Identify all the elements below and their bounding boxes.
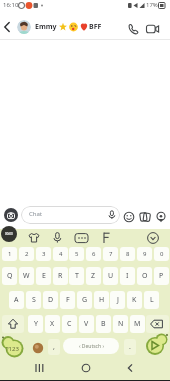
staticText: A (14, 295, 19, 305)
button[interactable]: 00:00 (1, 226, 17, 242)
staticText: 6 (92, 250, 96, 258)
button[interactable] (30, 361, 50, 375)
staticText: ‹ Deutsch › (79, 343, 104, 350)
staticText: Chat (29, 210, 43, 218)
button[interactable]: D (43, 291, 58, 309)
staticText: ?123 (6, 345, 19, 353)
staticText: I (126, 271, 129, 281)
button[interactable]: S (26, 291, 41, 309)
button[interactable]: 4 (53, 247, 68, 261)
button[interactable]: Emmy (35, 21, 102, 33)
staticText: G (82, 295, 88, 305)
staticText: J (117, 295, 119, 305)
staticText: N (118, 319, 124, 329)
staticText: Z (91, 271, 96, 281)
button[interactable] (32, 342, 44, 354)
button[interactable]: 6 (86, 247, 101, 261)
button[interactable] (27, 231, 41, 245)
button[interactable]: ?123 (0, 334, 28, 360)
staticText: 00:00 (5, 232, 13, 236)
button[interactable] (126, 22, 140, 36)
staticText: Q (7, 271, 13, 281)
button[interactable]: Z (86, 267, 101, 285)
button[interactable]: 1 (2, 247, 17, 261)
button[interactable]: V (79, 315, 94, 333)
button[interactable] (155, 211, 167, 223)
staticText: 5 (75, 250, 79, 258)
button[interactable]: U (103, 267, 118, 285)
button[interactable]: ‹ Deutsch › (63, 338, 119, 354)
button[interactable]: T (69, 267, 84, 285)
staticText: 0 (160, 250, 164, 258)
button[interactable] (51, 231, 64, 245)
button[interactable] (120, 361, 140, 375)
button[interactable]: W (19, 267, 34, 285)
button[interactable]: C (62, 315, 77, 333)
button[interactable]: , (48, 339, 60, 355)
staticText: Emmy (35, 22, 57, 32)
button[interactable]: J (110, 291, 125, 309)
staticText: 16:10 (3, 1, 19, 9)
staticText: 1 (8, 250, 12, 258)
button[interactable] (145, 23, 161, 35)
staticText: V (84, 319, 89, 329)
button[interactable]: I (120, 267, 135, 285)
button[interactable]: K (127, 291, 142, 309)
staticText: F (66, 295, 70, 305)
button[interactable] (142, 332, 170, 358)
button[interactable] (17, 20, 31, 34)
button[interactable] (123, 211, 135, 223)
button[interactable]: N (113, 315, 128, 333)
staticText: 4 (59, 250, 63, 258)
button[interactable] (139, 211, 151, 223)
staticText: 2 (25, 250, 29, 258)
button[interactable]: L (144, 291, 159, 309)
button[interactable]: M (130, 315, 145, 333)
staticText: E (42, 271, 46, 281)
button[interactable] (146, 315, 169, 333)
staticText: 9 (143, 250, 147, 258)
button[interactable]: A (9, 291, 24, 309)
button[interactable]: 3 (36, 247, 51, 261)
button[interactable]: . (124, 339, 136, 355)
button[interactable] (146, 231, 160, 245)
button[interactable]: 2 (19, 247, 34, 261)
staticText: U (108, 271, 114, 281)
button[interactable]: 7 (103, 247, 118, 261)
button[interactable] (2, 315, 24, 333)
button[interactable]: P (154, 267, 169, 285)
button[interactable] (76, 361, 96, 375)
button[interactable]: X (45, 315, 60, 333)
staticText: K (132, 295, 137, 305)
staticText: T (75, 271, 79, 281)
button[interactable] (4, 208, 18, 222)
button[interactable]: 8 (120, 247, 135, 261)
button[interactable]: R (53, 267, 68, 285)
button[interactable] (0, 18, 16, 36)
button[interactable]: F (60, 291, 75, 309)
button[interactable]: 0 (154, 247, 169, 261)
staticText: 7 (109, 250, 113, 258)
staticText: R (58, 271, 63, 281)
staticText: BFF (89, 22, 102, 32)
button[interactable]: E (36, 267, 51, 285)
staticText: H (99, 295, 105, 305)
button[interactable]: Y (28, 315, 43, 333)
button[interactable]: O (137, 267, 152, 285)
button[interactable] (100, 231, 112, 245)
button[interactable]: H (94, 291, 109, 309)
button[interactable]: Chat (21, 206, 120, 224)
staticText: D (48, 295, 54, 305)
staticText: 8 (126, 250, 130, 258)
button[interactable]: Q (2, 267, 17, 285)
staticText: B (101, 319, 106, 329)
staticText: 3 (42, 250, 46, 258)
button[interactable] (74, 232, 89, 244)
staticText: X (50, 319, 55, 329)
staticText: P (159, 271, 164, 281)
button[interactable]: G (77, 291, 92, 309)
button[interactable]: B (96, 315, 111, 333)
button[interactable]: 5 (69, 247, 84, 261)
button[interactable]: 9 (137, 247, 152, 261)
staticText: Y (34, 319, 38, 329)
